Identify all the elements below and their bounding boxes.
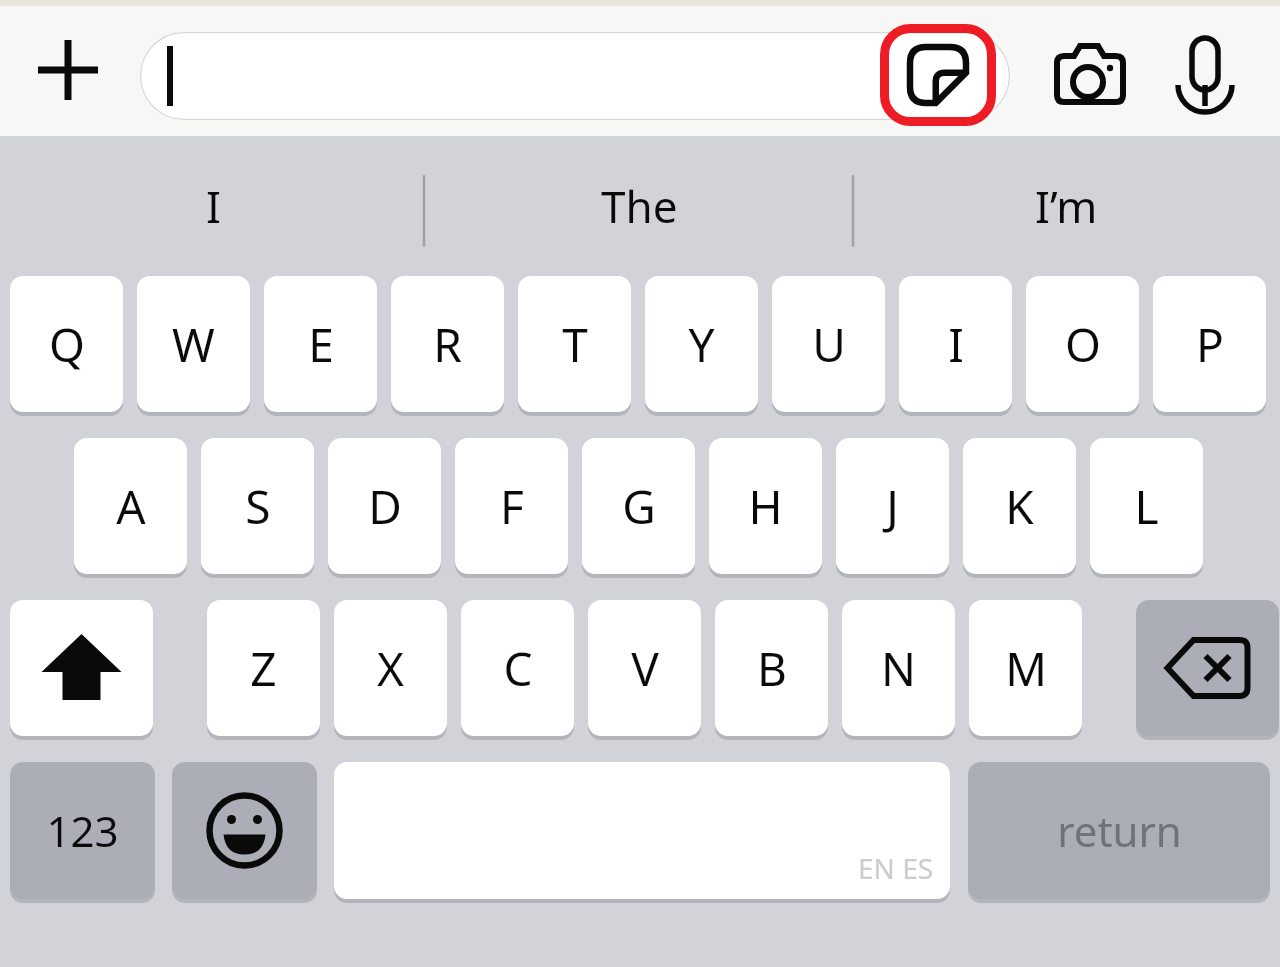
staticText: C (503, 637, 533, 700)
button[interactable]: Voice message (1162, 26, 1248, 122)
button[interactable]: L (1090, 438, 1203, 574)
staticText: M (1005, 637, 1047, 700)
button[interactable]: H (709, 438, 822, 574)
staticText: Z (250, 637, 277, 700)
staticText: EN ES (858, 849, 934, 887)
button[interactable]: N (842, 600, 955, 736)
staticText: I (948, 313, 964, 376)
staticText: I (206, 176, 221, 236)
button[interactable]: Y (645, 276, 758, 412)
staticText: Q (49, 313, 85, 376)
button[interactable]: Shift (10, 600, 153, 736)
staticText: U (812, 313, 846, 376)
staticText: G (622, 475, 656, 538)
button[interactable]: D (328, 438, 441, 574)
button[interactable]: U (772, 276, 885, 412)
staticText: S (245, 475, 271, 538)
button[interactable]: Backspace (1136, 600, 1279, 736)
button[interactable]: Z (207, 600, 320, 736)
staticText: 123 (46, 802, 119, 859)
button[interactable]: B (715, 600, 828, 736)
button[interactable]: M (969, 600, 1082, 736)
button[interactable]: X (334, 600, 447, 736)
button[interactable]: O (1026, 276, 1139, 412)
staticText: P (1196, 313, 1224, 376)
button[interactable]: W (137, 276, 250, 412)
button[interactable]: Q (10, 276, 123, 412)
staticText: W (172, 313, 215, 376)
button[interactable]: G (582, 438, 695, 574)
button[interactable]: V (588, 600, 701, 736)
staticText: L (1134, 475, 1159, 538)
button[interactable]: E (264, 276, 377, 412)
button[interactable]: S (201, 438, 314, 574)
staticText: Y (688, 313, 715, 376)
button[interactable]: Stickers (880, 24, 996, 126)
button[interactable]: T (518, 276, 631, 412)
staticText: return (1057, 802, 1182, 859)
staticText: H (748, 475, 783, 538)
button[interactable]: I (0, 136, 426, 276)
staticText: V (631, 637, 659, 700)
button[interactable]: Add attachment (28, 30, 108, 110)
staticText: F (500, 475, 524, 538)
staticText: O (1065, 313, 1101, 376)
button[interactable]: Space (334, 762, 950, 899)
staticText: N (881, 637, 916, 700)
staticText: D (368, 475, 402, 538)
button[interactable]: F (455, 438, 568, 574)
button[interactable]: C (461, 600, 574, 736)
button[interactable]: R (391, 276, 504, 412)
staticText: K (1005, 475, 1034, 538)
button[interactable]: Emoji (172, 762, 317, 899)
button[interactable]: I (899, 276, 1012, 412)
button[interactable]: A (74, 438, 187, 574)
staticText: R (433, 313, 462, 376)
button[interactable]: return (968, 762, 1270, 899)
button[interactable]: Camera (1044, 32, 1136, 120)
button[interactable]: J (836, 438, 949, 574)
button[interactable]: K (963, 438, 1076, 574)
button[interactable]: The (426, 136, 853, 276)
button[interactable]: P (1153, 276, 1266, 412)
button[interactable]: 123 (10, 762, 155, 899)
button[interactable] (140, 32, 1010, 120)
staticText: The (601, 176, 678, 236)
staticText: X (377, 637, 404, 700)
staticText: T (562, 313, 588, 376)
staticText: B (757, 637, 787, 700)
staticText: I’m (1035, 176, 1098, 236)
button[interactable]: I’m (853, 136, 1280, 276)
staticText: J (886, 475, 899, 538)
staticText: E (308, 313, 334, 376)
staticText: A (116, 475, 146, 538)
